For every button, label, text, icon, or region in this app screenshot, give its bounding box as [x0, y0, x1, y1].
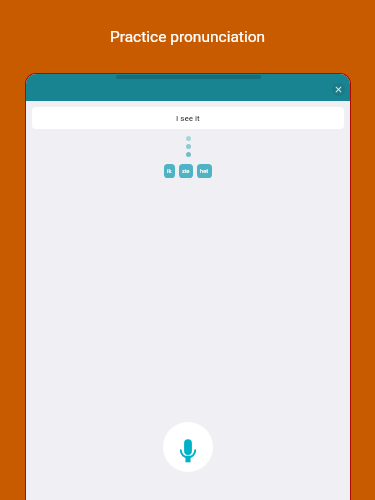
staticText: Practice pronunciation	[0, 28, 375, 46]
button[interactable]: zie	[179, 164, 193, 178]
staticText: ik	[167, 168, 172, 175]
button[interactable]: Close	[332, 83, 345, 96]
staticText: I see it	[176, 114, 200, 123]
button[interactable]: het	[197, 164, 212, 178]
button[interactable]: Record	[163, 422, 213, 472]
staticText: zie	[182, 168, 190, 175]
staticText: het	[200, 168, 209, 175]
button[interactable]: I see it	[32, 107, 344, 129]
button[interactable]: ik	[164, 164, 175, 178]
